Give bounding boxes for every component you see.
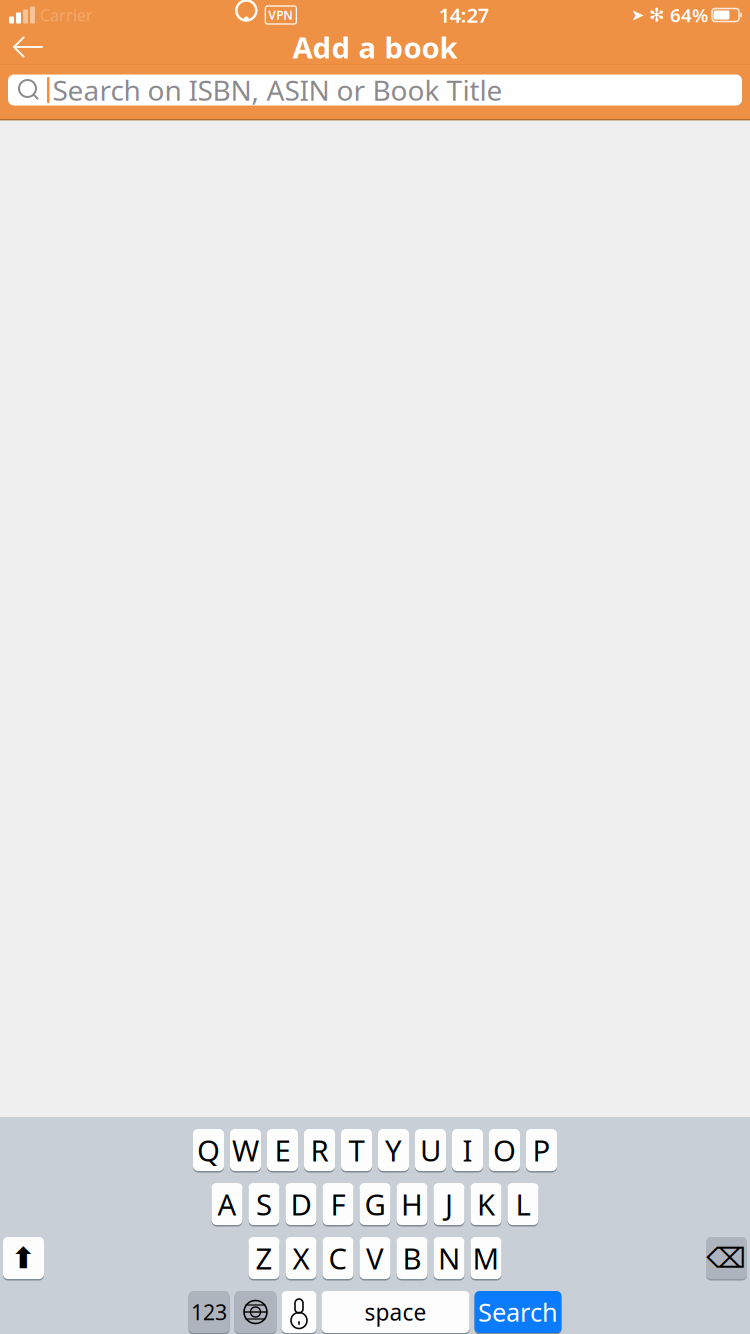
button[interactable]: T <box>341 1128 372 1172</box>
button[interactable]: Search on ISBN, ASIN or Book Title <box>8 74 742 105</box>
button[interactable]: C <box>322 1236 353 1280</box>
staticText: L <box>515 1184 530 1223</box>
staticText: N <box>438 1238 460 1277</box>
staticText: Add a book <box>292 27 457 66</box>
button[interactable]: Dictation <box>281 1290 316 1334</box>
staticText: 123 <box>191 1298 227 1326</box>
staticText: O <box>493 1130 516 1169</box>
staticText: F <box>330 1184 345 1223</box>
button[interactable]: M <box>470 1236 501 1280</box>
button[interactable]: N <box>433 1236 464 1280</box>
button[interactable]: B <box>396 1236 427 1280</box>
staticText: A <box>217 1184 236 1223</box>
button[interactable]: Back <box>6 25 50 69</box>
staticText: Z <box>255 1238 272 1277</box>
staticText: Carrier <box>40 4 93 26</box>
staticText: X <box>292 1238 309 1277</box>
button[interactable]: J <box>433 1182 464 1226</box>
button[interactable]: H <box>396 1182 427 1226</box>
staticText: P <box>532 1130 550 1169</box>
button[interactable]: Next keyboard <box>234 1290 276 1334</box>
button[interactable]: S <box>248 1182 279 1226</box>
button[interactable]: D <box>285 1182 316 1226</box>
staticText: R <box>310 1130 328 1169</box>
staticText: D <box>290 1184 311 1223</box>
button[interactable]: L <box>507 1182 538 1226</box>
button[interactable]: P <box>526 1128 557 1172</box>
staticText: 14:27 <box>439 2 489 28</box>
staticText: ⬆ <box>11 1241 36 1275</box>
button[interactable]: U <box>415 1128 446 1172</box>
button[interactable]: G <box>359 1182 390 1226</box>
button[interactable]: O <box>489 1128 520 1172</box>
staticText: VPN <box>268 7 293 23</box>
button[interactable]: F <box>322 1182 353 1226</box>
staticText: ➤ <box>631 6 644 24</box>
staticText: Search on ISBN, ASIN or Book Title <box>52 71 502 109</box>
staticText: B <box>402 1238 421 1277</box>
button[interactable]: Q <box>193 1128 224 1172</box>
button[interactable]: K <box>470 1182 501 1226</box>
staticText: I <box>462 1130 472 1169</box>
staticText: Q <box>197 1130 220 1169</box>
button[interactable]: Y <box>378 1128 409 1172</box>
staticText: ✻ <box>649 4 665 26</box>
staticText: 64% <box>670 3 708 27</box>
staticText: ⌫ <box>706 1242 746 1274</box>
button[interactable]: A <box>211 1182 242 1226</box>
button[interactable]: R <box>304 1128 335 1172</box>
button[interactable]: X <box>285 1236 316 1280</box>
staticText: K <box>477 1184 495 1223</box>
staticText: M <box>472 1238 499 1277</box>
staticText: W <box>232 1130 259 1169</box>
button[interactable]: space <box>321 1290 469 1334</box>
staticText: T <box>348 1130 364 1169</box>
button[interactable]: Shift <box>3 1236 44 1280</box>
button[interactable]: Delete <box>706 1236 747 1280</box>
button[interactable]: Search <box>474 1290 561 1334</box>
staticText: G <box>364 1184 385 1223</box>
staticText: U <box>420 1130 441 1169</box>
staticText: V <box>366 1238 384 1277</box>
staticText: S <box>256 1184 272 1223</box>
staticText: H <box>401 1184 423 1223</box>
button[interactable]: W <box>230 1128 261 1172</box>
button[interactable]: 123 <box>188 1290 229 1334</box>
staticText: E <box>274 1130 290 1169</box>
button[interactable]: V <box>359 1236 390 1280</box>
staticText: Y <box>385 1130 402 1169</box>
button[interactable]: Z <box>248 1236 279 1280</box>
staticText: space <box>364 1297 426 1327</box>
button[interactable]: E <box>267 1128 298 1172</box>
staticText: Search <box>478 1295 558 1329</box>
button[interactable]: I <box>452 1128 483 1172</box>
staticText: C <box>328 1238 347 1277</box>
staticText: J <box>445 1184 453 1223</box>
